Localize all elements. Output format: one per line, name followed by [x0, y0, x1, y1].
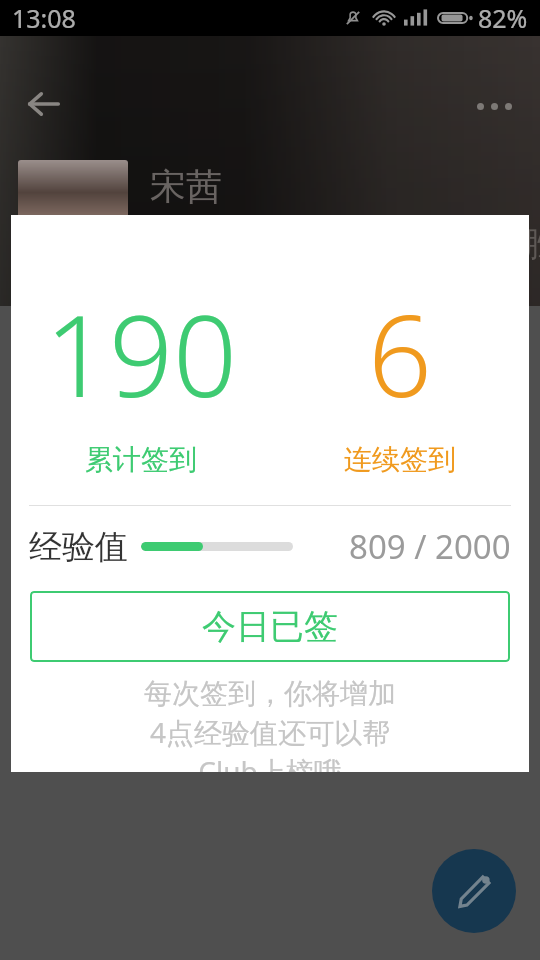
staticText: 今日已签 — [202, 605, 338, 648]
button[interactable]: 0 — [18, 328, 540, 373]
button[interactable]: Compose new post — [432, 849, 516, 933]
button[interactable]: Profile photo — [18, 160, 128, 268]
staticText: 82% — [478, 1, 528, 35]
button[interactable]: 今日已签 — [30, 591, 510, 662]
staticText: 美妞 — [72, 328, 144, 373]
staticText: 经验值 — [29, 526, 128, 568]
staticText: 累计签到 — [85, 442, 197, 477]
staticText: 13:08 — [12, 1, 76, 35]
staticText: 每次签到，你将增加4点经验值还可以帮Club上榜哦 — [141, 676, 399, 772]
staticText: 190 — [45, 277, 237, 430]
button[interactable]: Back — [16, 76, 72, 132]
button[interactable]: 6 — [270, 277, 529, 477]
button[interactable]: 190 — [11, 277, 270, 477]
staticText: 连续签到 — [344, 442, 456, 477]
staticText: 809 / 2000 — [349, 524, 511, 569]
staticText: 出生在中国成名于韩国的胜 — [150, 223, 540, 266]
staticText: 宋茜 — [150, 164, 222, 209]
button[interactable]: More options — [466, 78, 522, 134]
staticText: 6 — [368, 277, 432, 430]
